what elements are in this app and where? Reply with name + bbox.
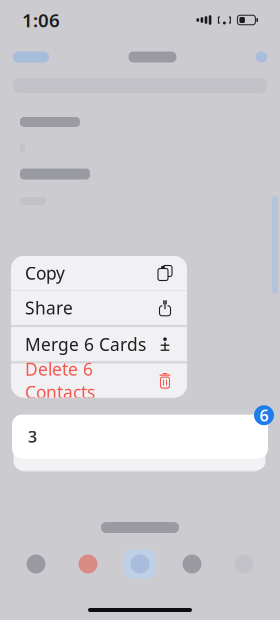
- button[interactable]: Share: [11, 291, 187, 325]
- staticText: Delete 6 Contacts: [25, 358, 95, 404]
- staticText: 1:06: [22, 8, 60, 32]
- staticText: Copy: [25, 261, 65, 284]
- staticText: Share: [25, 296, 73, 319]
- staticText: 6: [259, 405, 268, 426]
- staticText: 3: [28, 426, 37, 447]
- button[interactable]: Merge 6 Cards: [11, 327, 187, 361]
- button[interactable]: Copy: [11, 256, 187, 290]
- staticText: Merge 6 Cards: [25, 333, 146, 356]
- button[interactable]: Delete 6 Contacts: [11, 364, 187, 398]
